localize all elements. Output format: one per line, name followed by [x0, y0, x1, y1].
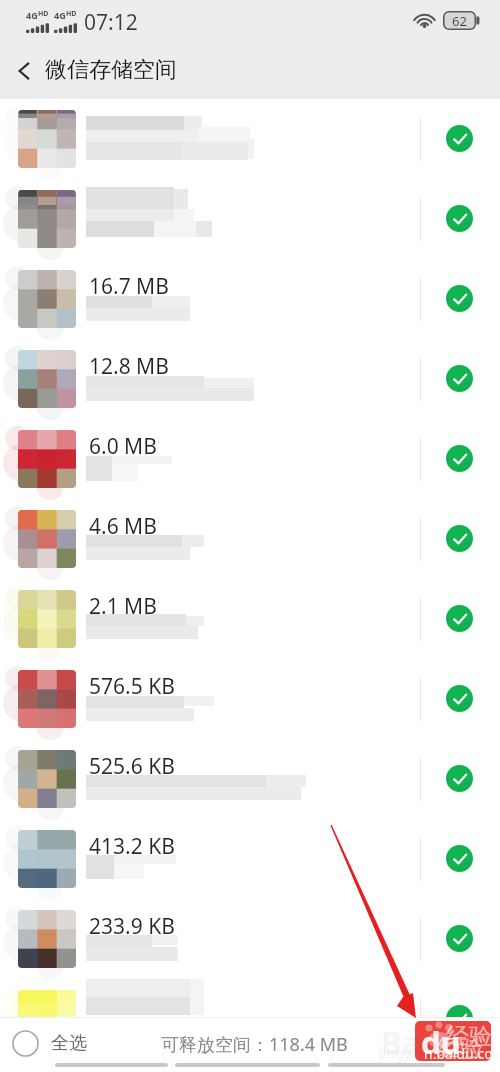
- button[interactable]: Selected: [0, 979, 500, 1017]
- staticText: 4.6 MB: [89, 512, 157, 541]
- button[interactable]: 576.5 KB: [0, 659, 500, 739]
- button[interactable]: 233.9 KB: [0, 899, 500, 979]
- button[interactable]: Selected: [446, 685, 473, 712]
- button[interactable]: Selected: [0, 99, 500, 179]
- button[interactable]: Back: [6, 49, 42, 93]
- staticText: n.baidu.com: [424, 1044, 500, 1063]
- button[interactable]: Selected: [446, 525, 473, 552]
- staticText: 可释放空间：118.4 MB: [161, 1032, 348, 1057]
- staticText: 经验: [446, 1022, 492, 1051]
- staticText: Baidu: [381, 1021, 470, 1063]
- staticText: HD: [38, 9, 49, 19]
- staticText: 全选: [51, 1032, 87, 1055]
- button[interactable]: Selected: [446, 205, 473, 232]
- button[interactable]: Selected: [446, 445, 473, 472]
- button[interactable]: 6.0 MB: [0, 419, 500, 499]
- staticText: 07:12: [84, 8, 138, 37]
- staticText: 12.8 MB: [89, 352, 169, 381]
- staticText: 576.5 KB: [89, 672, 175, 701]
- button[interactable]: Selected: [446, 605, 473, 632]
- staticText: 16.7 MB: [89, 272, 169, 301]
- staticText: du: [421, 1021, 461, 1063]
- button[interactable]: 525.6 KB: [0, 739, 500, 819]
- staticText: 413.2 KB: [89, 832, 175, 861]
- staticText: 233.9 KB: [89, 912, 175, 941]
- button[interactable]: 全选: [8, 1026, 91, 1061]
- button[interactable]: 2.1 MB: [0, 579, 500, 659]
- button[interactable]: Selected: [446, 365, 473, 392]
- staticText: 6.0 MB: [89, 432, 157, 461]
- button[interactable]: 16.7 MB: [0, 259, 500, 339]
- button[interactable]: Selected: [446, 1005, 473, 1032]
- button[interactable]: 413.2 KB: [0, 819, 500, 899]
- button[interactable]: 12.8 MB: [0, 339, 500, 419]
- button[interactable]: Selected: [0, 179, 500, 259]
- button[interactable]: Selected: [446, 125, 473, 152]
- staticText: 525.6 KB: [89, 752, 175, 781]
- staticText: 经验: [437, 1034, 483, 1063]
- button[interactable]: 4.6 MB: [0, 499, 500, 579]
- button[interactable]: Selected: [446, 285, 473, 312]
- button[interactable]: Selected: [446, 845, 473, 872]
- staticText: jingyan.baidu.com: [379, 1044, 500, 1063]
- staticText: 4G: [26, 9, 38, 21]
- staticText: 微信存储空间: [45, 56, 177, 84]
- staticText: 2.1 MB: [89, 592, 157, 621]
- button[interactable]: Selected: [446, 925, 473, 952]
- staticText: HD: [66, 9, 77, 19]
- staticText: 4G: [54, 9, 66, 21]
- staticText: 62: [452, 12, 467, 30]
- button[interactable]: Selected: [446, 765, 473, 792]
